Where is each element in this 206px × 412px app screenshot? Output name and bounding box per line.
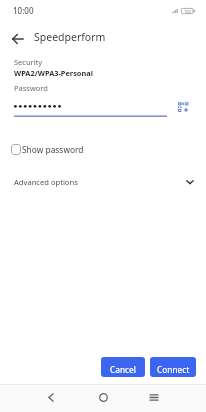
button[interactable]: Advanced options <box>0 173 206 191</box>
button[interactable]: Connect <box>150 357 196 377</box>
button[interactable]: Back <box>7 28 28 49</box>
staticText: 10:00 <box>13 5 34 16</box>
button[interactable]: Back <box>40 386 62 408</box>
staticText: Cancel <box>110 364 136 375</box>
button[interactable]: Scan QR code <box>173 97 194 118</box>
button[interactable]: Show password <box>0 140 206 158</box>
staticText: 100 <box>184 9 191 14</box>
staticText: Security <box>14 57 43 67</box>
staticText: Show password <box>22 144 84 155</box>
staticText: Speedperform <box>34 30 106 44</box>
staticText: Connect <box>157 364 190 375</box>
staticText: Advanced options <box>14 177 78 187</box>
button[interactable]: Recent apps <box>143 386 165 408</box>
staticText: WPA2/WPA3-Personal <box>14 68 93 78</box>
button[interactable]: Home <box>92 386 114 408</box>
button[interactable]: Cancel <box>101 357 145 377</box>
staticText: Password <box>14 83 48 93</box>
